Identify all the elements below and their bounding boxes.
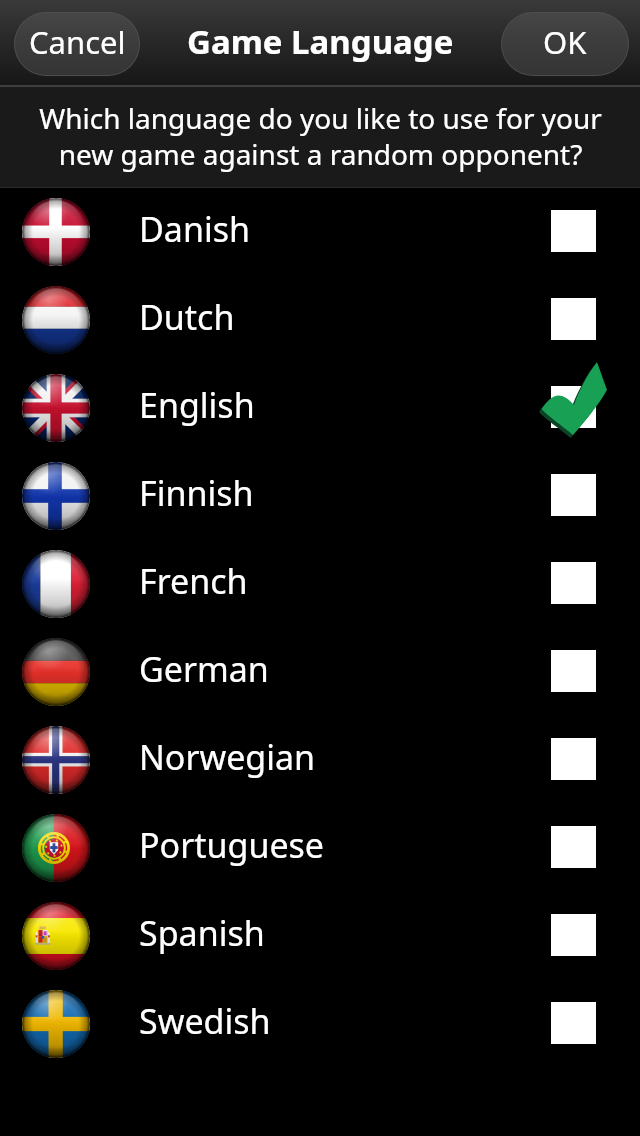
staticText: French: [139, 558, 248, 604]
staticText: German: [139, 646, 269, 692]
button[interactable]: Danish: [0, 188, 640, 276]
staticText: Game Language: [187, 19, 454, 64]
button[interactable]: German: [0, 628, 640, 716]
staticText: Spanish: [139, 910, 265, 956]
staticText: Portuguese: [139, 822, 325, 868]
staticText: Dutch: [139, 294, 235, 340]
button[interactable]: Norwegian: [0, 716, 640, 804]
staticText: English: [139, 382, 255, 428]
staticText: Cancel: [29, 21, 126, 63]
button[interactable]: Spanish: [0, 892, 640, 980]
button[interactable]: OK: [501, 12, 629, 76]
staticText: Swedish: [139, 998, 271, 1044]
staticText: Which language do you like to use for yo…: [39, 99, 602, 173]
button[interactable]: Swedish: [0, 980, 640, 1068]
staticText: Danish: [139, 206, 250, 252]
button[interactable]: Dutch: [0, 276, 640, 364]
staticText: OK: [543, 21, 587, 63]
staticText: Norwegian: [139, 734, 316, 780]
button[interactable]: English: [0, 364, 640, 452]
button[interactable]: French: [0, 540, 640, 628]
button[interactable]: Finnish: [0, 452, 640, 540]
button[interactable]: Cancel: [14, 12, 140, 76]
button[interactable]: Portuguese: [0, 804, 640, 892]
staticText: Finnish: [139, 470, 254, 516]
button[interactable]: English selected: [551, 386, 596, 428]
